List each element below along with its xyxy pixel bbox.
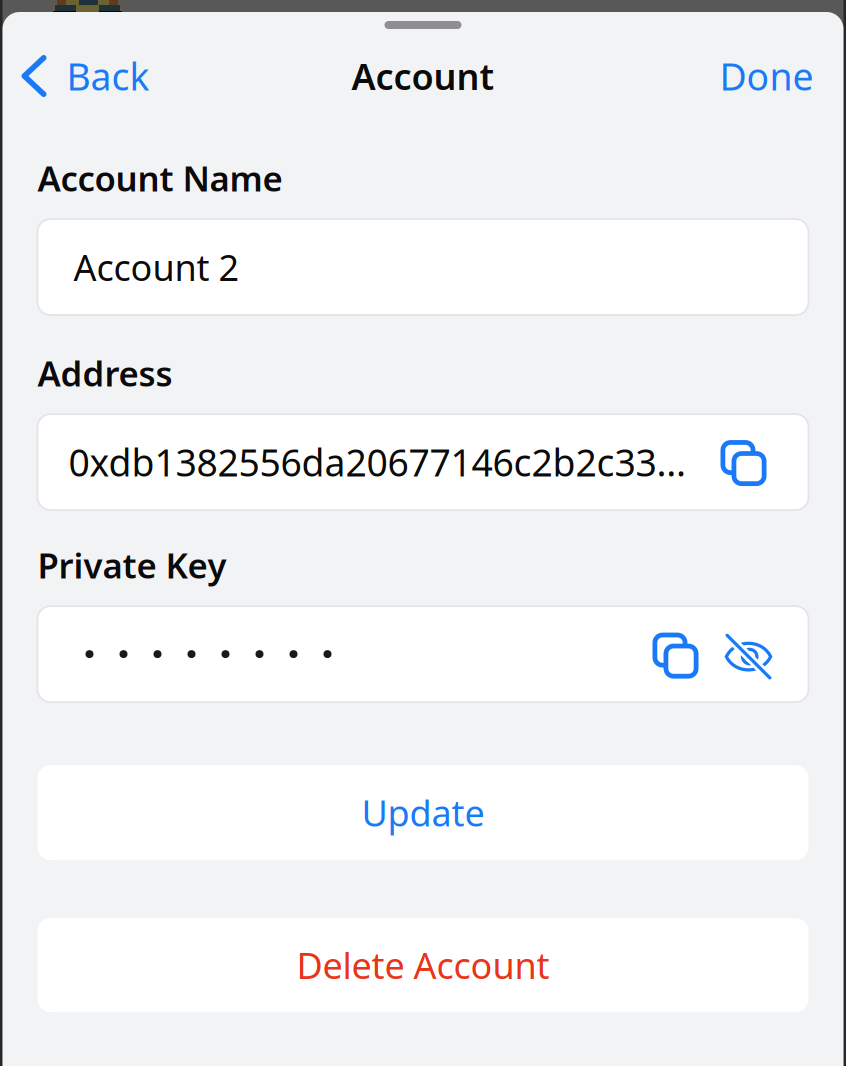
staticText: Private Key (37, 542, 226, 588)
staticText: Back (66, 51, 149, 101)
button[interactable]: Update (37, 765, 808, 860)
staticText: Update (361, 789, 484, 836)
staticText: Account 2 (73, 243, 239, 291)
staticText: Done (719, 51, 813, 101)
button[interactable]: Copy private key (652, 630, 698, 679)
button[interactable]: Copy address (720, 438, 808, 486)
staticText: Address (37, 350, 172, 396)
staticText: 0xdb1382556da20677146c2b2c33… (68, 437, 686, 487)
button[interactable]: Reveal private key (698, 632, 808, 676)
button[interactable]: Back (2, 45, 149, 107)
button[interactable]: Done (719, 45, 843, 107)
staticText: Account (351, 52, 494, 100)
staticText: Delete Account (296, 941, 549, 989)
staticText: Account Name (37, 155, 282, 201)
button[interactable]: Delete Account (37, 918, 808, 1012)
